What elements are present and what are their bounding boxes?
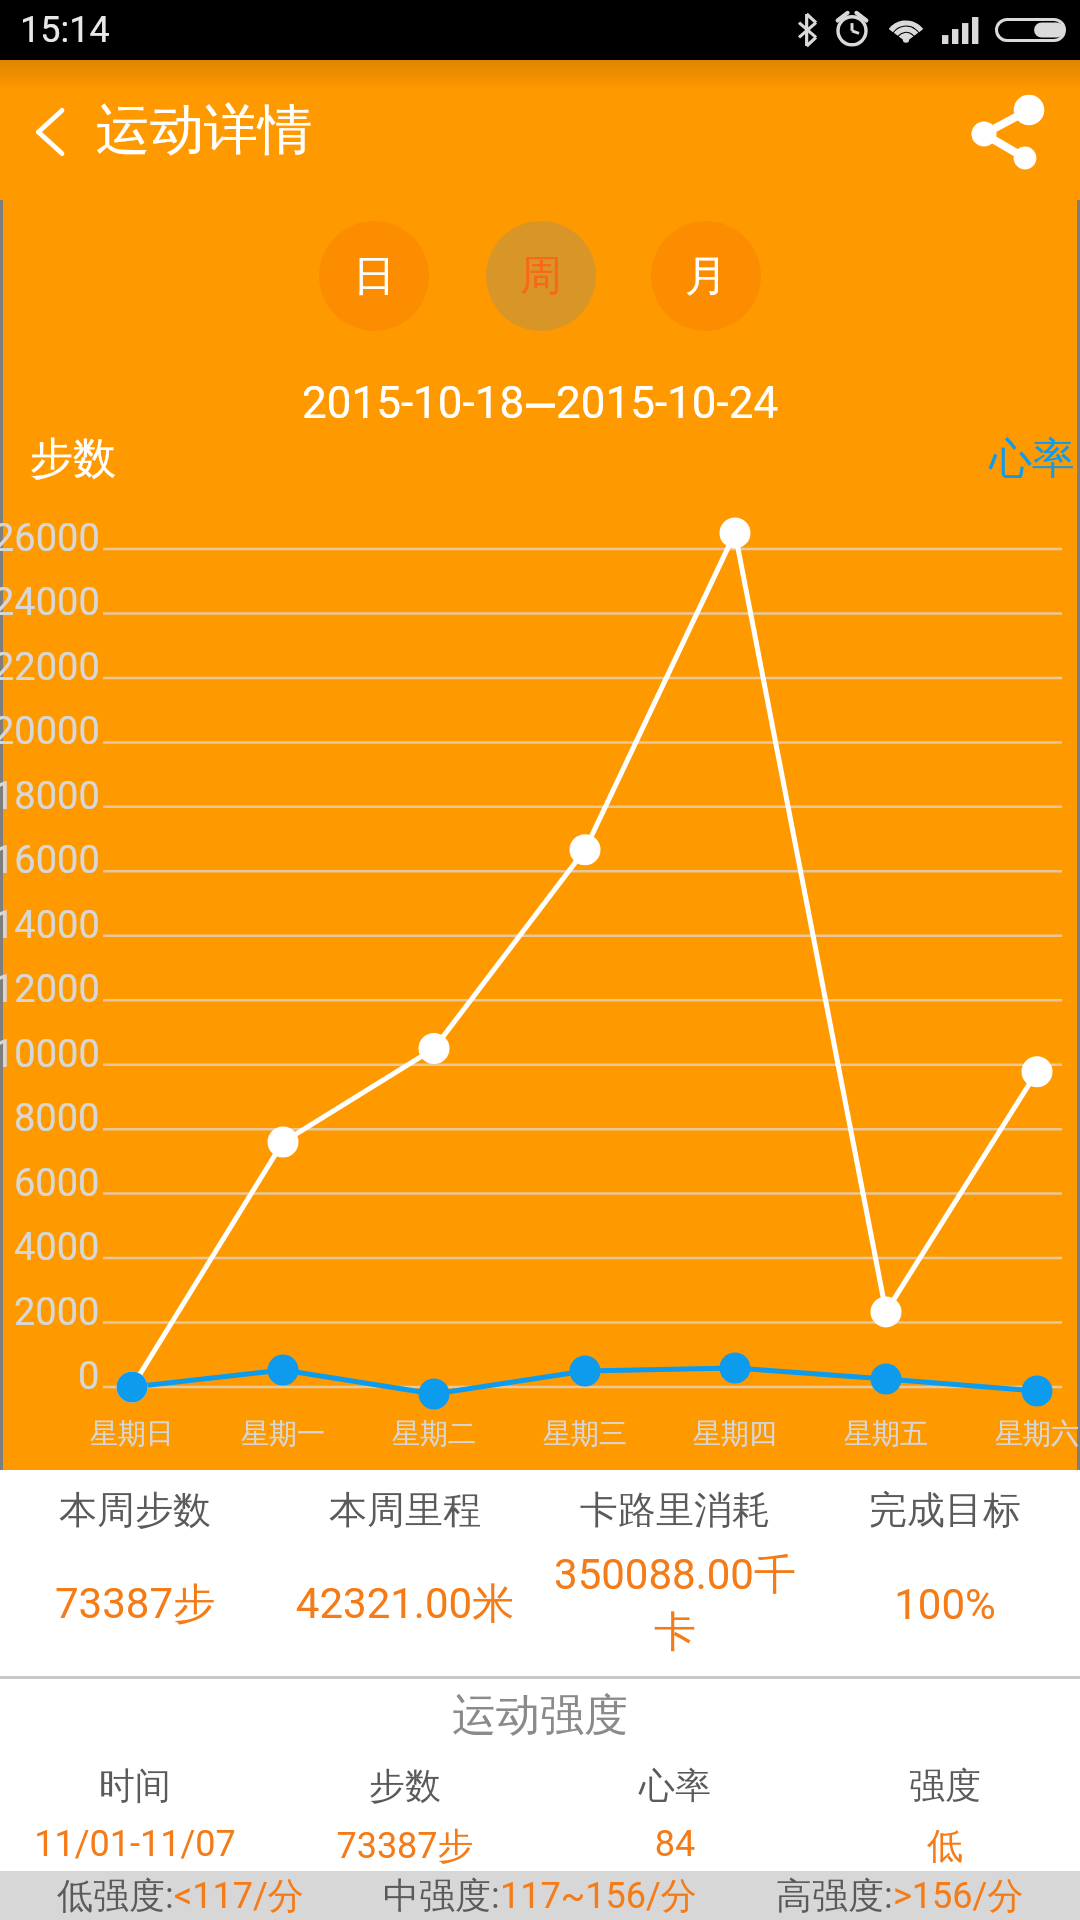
staticText: 运动强度 xyxy=(0,1688,1080,1743)
button[interactable]: 强度 xyxy=(810,1763,1080,1871)
staticText: 15:14 xyxy=(20,9,110,51)
staticText: 14000 xyxy=(0,903,100,948)
staticText: 2015-10-18 xyxy=(302,377,525,429)
staticText: 低强度: xyxy=(57,1873,174,1918)
staticText: 16000 xyxy=(0,838,100,883)
staticText: 8000 xyxy=(14,1096,100,1141)
button[interactable]: Share xyxy=(940,60,1080,200)
staticText: 时间 xyxy=(0,1763,270,1808)
button[interactable]: 步数 xyxy=(270,1763,540,1871)
staticText: 步数 xyxy=(270,1763,540,1808)
staticText: 10000 xyxy=(0,1032,100,1077)
button[interactable]: 心率 xyxy=(540,1763,810,1871)
staticText: 12000 xyxy=(0,967,100,1012)
staticText: 6000 xyxy=(14,1161,100,1206)
staticText: 4000 xyxy=(14,1225,100,1270)
staticText: 星期日 xyxy=(90,1416,174,1451)
staticText: 73387步 xyxy=(0,1578,270,1631)
staticText: 中强度: xyxy=(383,1873,500,1918)
staticText: 100% xyxy=(810,1580,1080,1629)
staticText: 星期六 xyxy=(995,1416,1079,1451)
staticText: 星期三 xyxy=(543,1416,627,1451)
staticText: 2015-10-24 xyxy=(556,377,779,429)
staticText: 运动详情 xyxy=(96,96,312,164)
staticText: 低 xyxy=(810,1823,1080,1868)
staticText: 高强度: xyxy=(776,1873,893,1918)
staticText: 22000 xyxy=(0,645,100,690)
staticText: 117~156/分 xyxy=(500,1873,697,1918)
staticText: 42321.00米 xyxy=(270,1578,540,1631)
staticText: 强度 xyxy=(810,1763,1080,1808)
staticText: <117/分 xyxy=(174,1873,304,1918)
button[interactable]: 本周里程 xyxy=(270,1470,540,1675)
button[interactable]: 月 xyxy=(651,221,761,331)
button[interactable]: 本周步数 xyxy=(0,1470,270,1675)
button[interactable]: 时间 xyxy=(0,1763,270,1871)
staticText: 星期五 xyxy=(844,1416,928,1451)
button[interactable]: 卡路里消耗 xyxy=(540,1470,810,1675)
staticText: 日 xyxy=(353,250,395,303)
staticText: 星期二 xyxy=(392,1416,476,1451)
staticText: 84 xyxy=(540,1823,810,1865)
staticText: 月 xyxy=(685,250,727,303)
staticText: 星期四 xyxy=(693,1416,777,1451)
staticText: 26000 xyxy=(0,516,100,561)
button[interactable]: 周 xyxy=(486,221,596,331)
staticText: 11/01-11/07 xyxy=(0,1823,270,1865)
button[interactable]: 完成目标 xyxy=(810,1470,1080,1675)
staticText: 步数 xyxy=(30,432,116,486)
staticText: 心率 xyxy=(540,1763,810,1808)
staticText: 20000 xyxy=(0,709,100,754)
staticText: 星期一 xyxy=(241,1416,325,1451)
staticText: 本周步数 xyxy=(0,1486,270,1534)
staticText: 73387步 xyxy=(270,1823,540,1868)
button[interactable]: 日 xyxy=(319,221,429,331)
staticText: 350088.00千卡 xyxy=(540,1549,810,1659)
staticText: 24000 xyxy=(0,580,100,625)
button[interactable]: Back xyxy=(0,60,96,200)
staticText: 心率 xyxy=(989,432,1075,486)
staticText: 18000 xyxy=(0,774,100,819)
staticText: 周 xyxy=(520,250,562,303)
staticText: 本周里程 xyxy=(270,1486,540,1534)
staticText: 2000 xyxy=(14,1290,100,1335)
staticText: 0 xyxy=(78,1354,100,1399)
staticText: >156/分 xyxy=(893,1873,1024,1918)
staticText: 完成目标 xyxy=(810,1486,1080,1534)
staticText: 卡路里消耗 xyxy=(540,1486,810,1534)
